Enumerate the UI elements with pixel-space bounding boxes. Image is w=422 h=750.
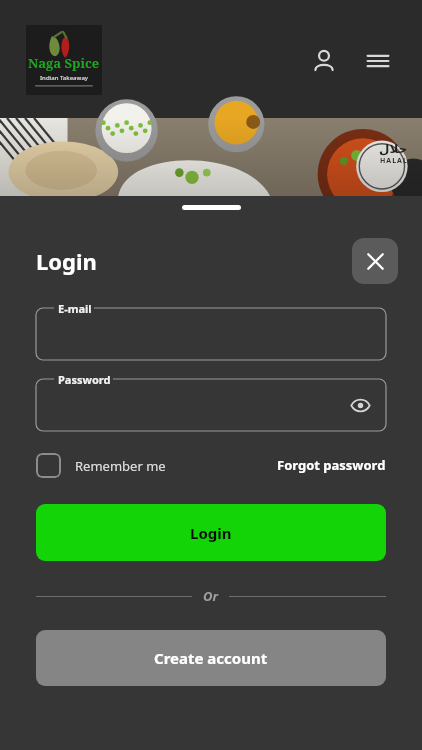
button[interactable]: Close <box>352 238 398 284</box>
button[interactable]: Menu <box>356 39 400 83</box>
button[interactable]: Forgot password <box>277 450 386 480</box>
button[interactable]: Account <box>302 39 346 83</box>
staticText: حلال <box>379 142 408 156</box>
button[interactable]: Show password <box>342 387 378 423</box>
staticText: Indian Takeaway <box>40 74 88 82</box>
button[interactable]: Naga Spice home <box>26 25 102 95</box>
staticText: Or <box>203 587 218 605</box>
button[interactable]: Create account <box>36 630 386 686</box>
button[interactable]: Login <box>36 504 386 561</box>
staticText: Remember me <box>75 457 166 475</box>
staticText: E-mail <box>58 301 92 316</box>
staticText: Create account <box>154 648 268 668</box>
staticText: Password <box>58 372 111 387</box>
staticText: Login <box>190 523 232 543</box>
staticText: Login <box>36 246 97 276</box>
button[interactable]: Remember me <box>36 453 172 478</box>
staticText: Forgot password <box>277 456 386 474</box>
staticText: Naga Spice <box>28 54 100 72</box>
staticText: HALAL <box>380 156 408 166</box>
